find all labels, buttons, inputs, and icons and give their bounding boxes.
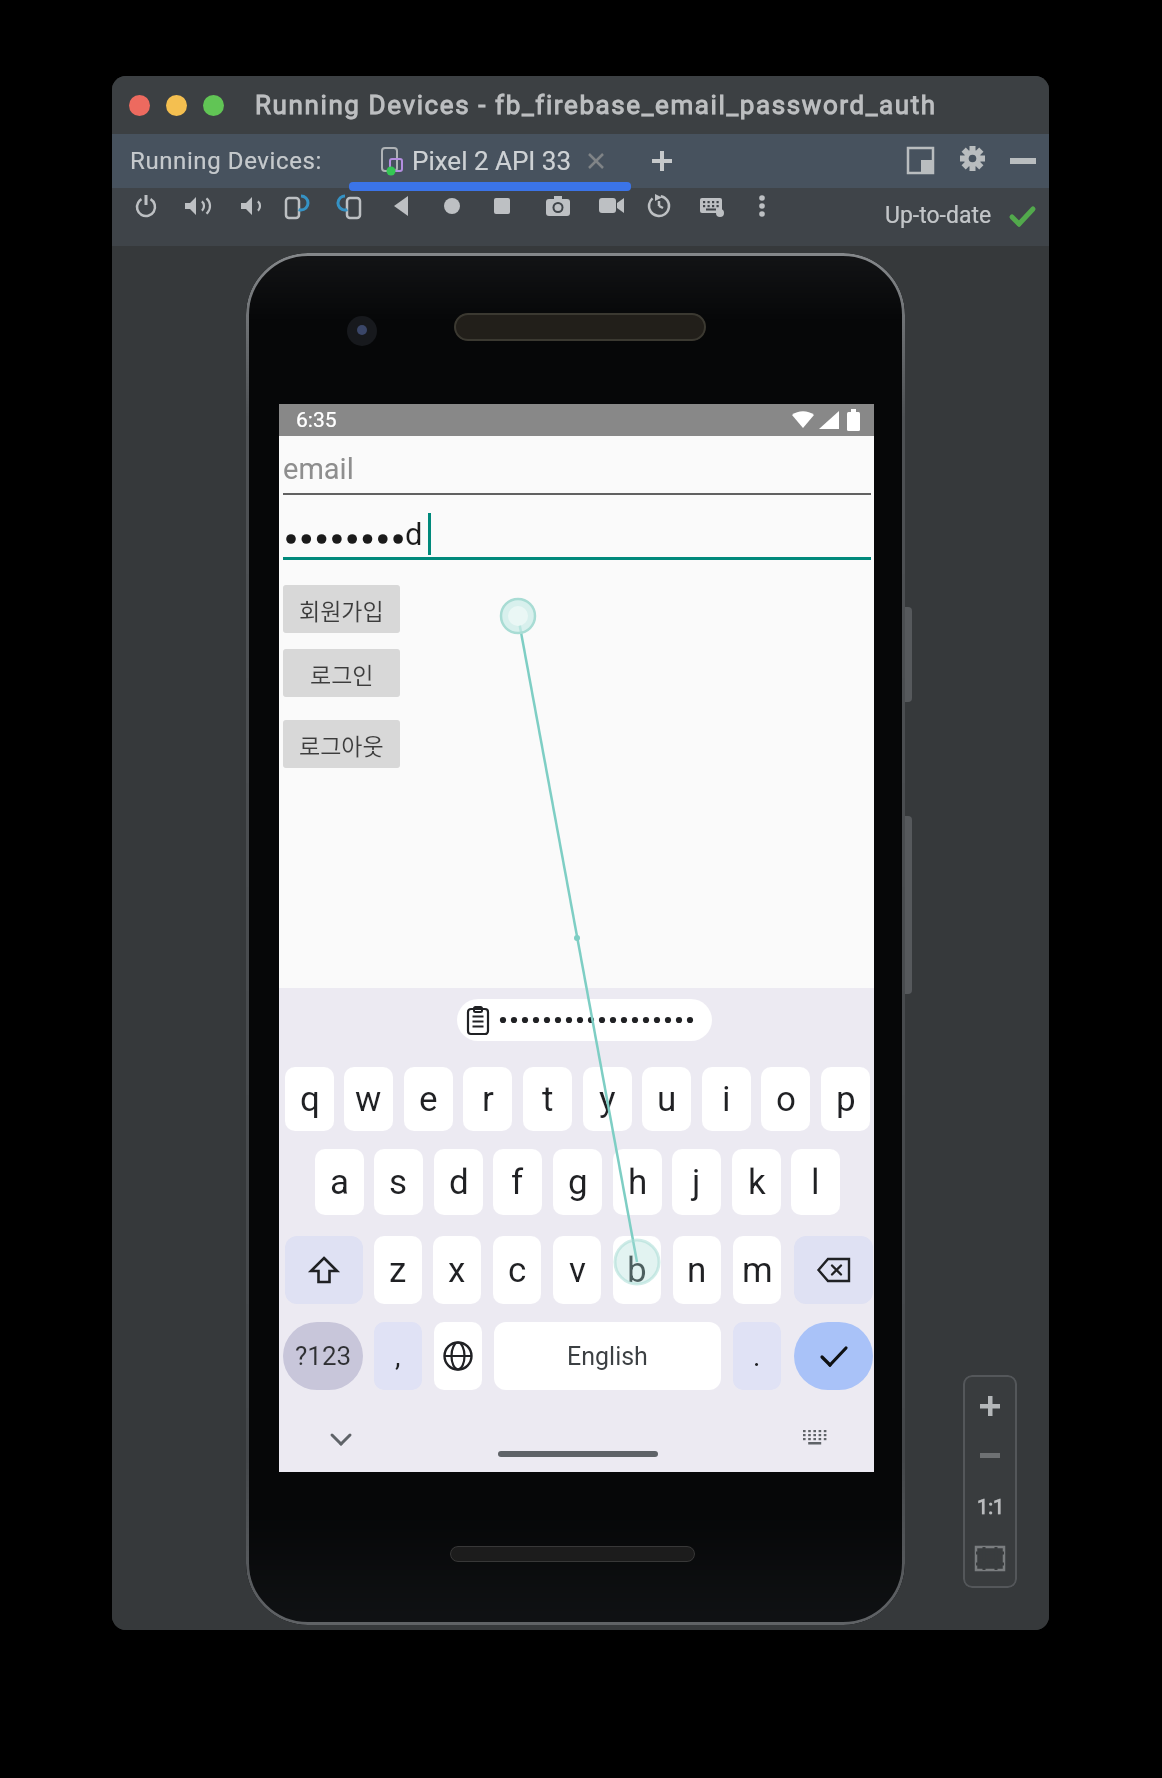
- staticText: email: [283, 452, 354, 486]
- button[interactable]: [284, 194, 310, 220]
- button[interactable]: 로그아웃: [283, 720, 400, 768]
- button[interactable]: o: [761, 1067, 810, 1131]
- staticText: m: [742, 1250, 773, 1291]
- button[interactable]: c: [493, 1236, 541, 1304]
- button[interactable]: [457, 999, 712, 1041]
- button[interactable]: [392, 196, 412, 216]
- button[interactable]: English: [494, 1322, 721, 1390]
- button[interactable]: [443, 197, 461, 215]
- staticText: 6:35: [296, 408, 337, 433]
- button[interactable]: [700, 196, 726, 222]
- button[interactable]: [960, 146, 985, 171]
- button[interactable]: a: [315, 1149, 364, 1215]
- staticText: k: [748, 1162, 766, 1203]
- staticText: d: [449, 1162, 469, 1203]
- button[interactable]: l: [791, 1149, 840, 1215]
- button[interactable]: [237, 194, 261, 218]
- button[interactable]: Pixel 2 API 33: [380, 134, 604, 188]
- button[interactable]: r: [463, 1067, 512, 1131]
- button[interactable]: t: [523, 1067, 572, 1131]
- button[interactable]: f: [493, 1149, 542, 1215]
- staticText: h: [628, 1162, 648, 1203]
- button[interactable]: w: [344, 1067, 393, 1131]
- staticText: ,: [395, 1340, 401, 1373]
- button[interactable]: [331, 1431, 351, 1447]
- button[interactable]: p: [821, 1067, 870, 1131]
- staticText: w: [355, 1079, 382, 1120]
- button[interactable]: [494, 198, 510, 214]
- staticText: English: [567, 1342, 648, 1371]
- staticText: a: [330, 1162, 350, 1203]
- button[interactable]: [203, 95, 224, 116]
- button[interactable]: [166, 95, 187, 116]
- button[interactable]: g: [553, 1149, 602, 1215]
- button[interactable]: h: [613, 1149, 662, 1215]
- button[interactable]: [434, 1322, 482, 1390]
- staticText: r: [482, 1079, 494, 1120]
- button[interactable]: .: [733, 1322, 781, 1390]
- staticText: p: [836, 1079, 856, 1120]
- staticText: b: [627, 1250, 647, 1291]
- staticText: .: [753, 1340, 761, 1373]
- staticText: i: [722, 1079, 731, 1120]
- button[interactable]: [336, 194, 362, 220]
- button[interactable]: ,: [374, 1322, 422, 1390]
- button[interactable]: [758, 195, 766, 219]
- button[interactable]: x: [433, 1236, 481, 1304]
- staticText: e: [419, 1079, 438, 1120]
- staticText: q: [300, 1079, 320, 1120]
- button[interactable]: 회원가입: [283, 585, 400, 633]
- staticText: Running Devices - fb_firebase_email_pass…: [255, 90, 937, 120]
- button[interactable]: [980, 1396, 1000, 1416]
- button[interactable]: d: [434, 1149, 483, 1215]
- staticText: u: [657, 1079, 677, 1120]
- button[interactable]: [803, 1430, 829, 1448]
- button[interactable]: m: [733, 1236, 781, 1304]
- staticText: c: [508, 1250, 527, 1291]
- button[interactable]: 1:1: [977, 1495, 1005, 1518]
- staticText: f: [511, 1162, 524, 1203]
- button[interactable]: [976, 1547, 1004, 1570]
- button[interactable]: y: [583, 1067, 632, 1131]
- staticText: n: [687, 1250, 707, 1291]
- button[interactable]: e: [404, 1067, 453, 1131]
- button[interactable]: [129, 95, 150, 116]
- staticText: Pixel 2 API 33: [412, 146, 572, 176]
- button[interactable]: [599, 197, 625, 223]
- button[interactable]: n: [673, 1236, 721, 1304]
- button[interactable]: [134, 194, 158, 218]
- button[interactable]: v: [553, 1236, 601, 1304]
- staticText: Running Devices:: [130, 147, 322, 175]
- button[interactable]: j: [672, 1149, 721, 1215]
- button[interactable]: [546, 195, 570, 219]
- button[interactable]: q: [285, 1067, 334, 1131]
- button[interactable]: [647, 194, 671, 218]
- staticText: 로그인: [310, 657, 374, 690]
- button[interactable]: [794, 1322, 873, 1390]
- button[interactable]: [183, 194, 207, 218]
- button[interactable]: i: [702, 1067, 751, 1131]
- button[interactable]: z: [374, 1236, 422, 1304]
- staticText: y: [599, 1079, 616, 1120]
- staticText: 회원가입: [299, 593, 384, 626]
- staticText: l: [811, 1162, 820, 1203]
- staticText: s: [389, 1162, 408, 1203]
- button[interactable]: s: [374, 1149, 423, 1215]
- staticText: 로그아웃: [299, 728, 384, 761]
- button[interactable]: u: [642, 1067, 691, 1131]
- staticText: j: [692, 1162, 701, 1203]
- staticText: o: [776, 1079, 796, 1120]
- button[interactable]: 로그인: [283, 649, 400, 697]
- staticText: g: [568, 1162, 588, 1203]
- staticText: ?123: [295, 1341, 352, 1371]
- staticText: Up-to-date: [885, 202, 992, 229]
- button[interactable]: b: [613, 1236, 661, 1304]
- staticText: t: [542, 1079, 554, 1120]
- button[interactable]: [285, 1236, 363, 1304]
- button[interactable]: ?123: [283, 1322, 363, 1390]
- button[interactable]: k: [732, 1149, 781, 1215]
- button[interactable]: [794, 1236, 873, 1304]
- staticText: v: [569, 1250, 586, 1291]
- button[interactable]: [652, 151, 672, 171]
